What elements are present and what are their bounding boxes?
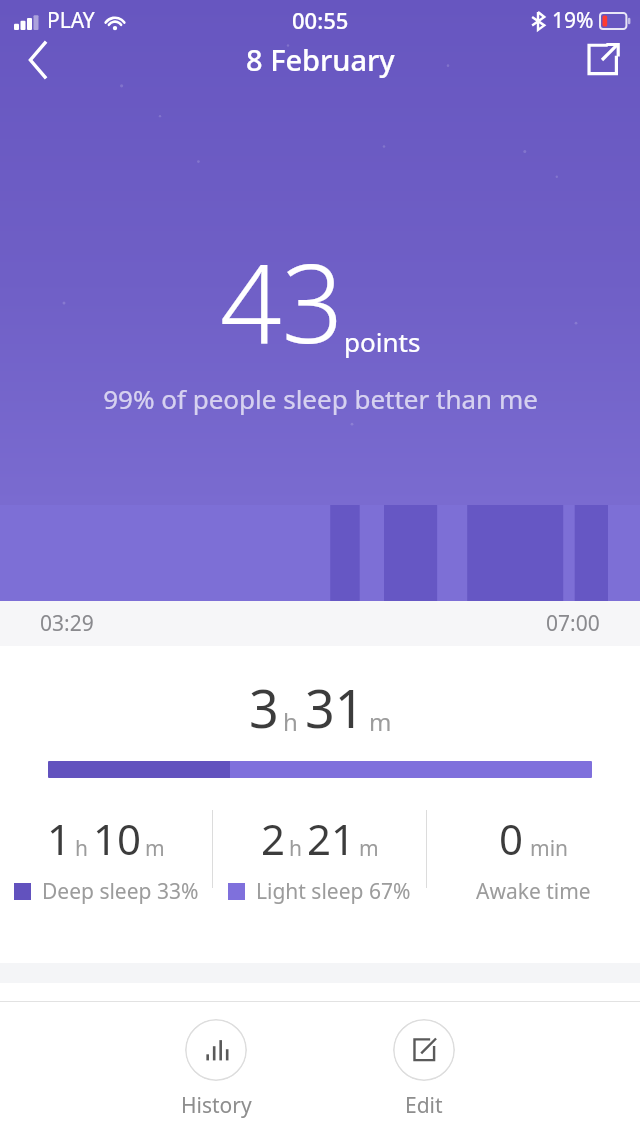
staticText: Light sleep 67% bbox=[256, 877, 411, 905]
staticText: 43 bbox=[220, 228, 344, 375]
staticText: 0 bbox=[499, 810, 524, 867]
staticText: min bbox=[530, 834, 569, 863]
button[interactable]: 0 bbox=[427, 810, 640, 905]
staticText: h bbox=[75, 834, 88, 863]
staticText: 10 bbox=[93, 810, 142, 867]
staticText: 99% of people sleep better than me bbox=[103, 381, 538, 416]
staticText: h bbox=[283, 705, 298, 738]
staticText: Edit bbox=[405, 1091, 443, 1120]
staticText: Deep sleep 33% bbox=[42, 877, 199, 905]
staticText: 00:55 bbox=[292, 5, 349, 35]
button[interactable]: 1 bbox=[0, 810, 212, 905]
button[interactable]: Share bbox=[564, 40, 640, 80]
staticText: 03:29 bbox=[40, 609, 94, 638]
staticText: History bbox=[181, 1091, 252, 1120]
button[interactable]: History bbox=[151, 1013, 281, 1126]
staticText: h bbox=[289, 834, 302, 863]
button[interactable]: 2 bbox=[213, 810, 426, 905]
button[interactable]: Edit bbox=[359, 1013, 489, 1126]
staticText: m bbox=[145, 834, 165, 863]
staticText: Awake time bbox=[476, 877, 591, 905]
staticText: m bbox=[369, 705, 392, 738]
staticText: 31 bbox=[305, 672, 365, 743]
staticText: 2 bbox=[261, 810, 286, 867]
staticText: 21 bbox=[307, 810, 356, 867]
staticText: 3 bbox=[249, 672, 279, 743]
staticText: points bbox=[344, 324, 421, 359]
staticText: 8 February bbox=[246, 40, 395, 79]
staticText: m bbox=[359, 834, 379, 863]
staticText: 19% bbox=[552, 6, 594, 35]
staticText: PLAY bbox=[47, 6, 95, 35]
staticText: 07:00 bbox=[546, 609, 600, 638]
staticText: 1 bbox=[47, 810, 72, 867]
button[interactable]: Back bbox=[0, 40, 76, 80]
